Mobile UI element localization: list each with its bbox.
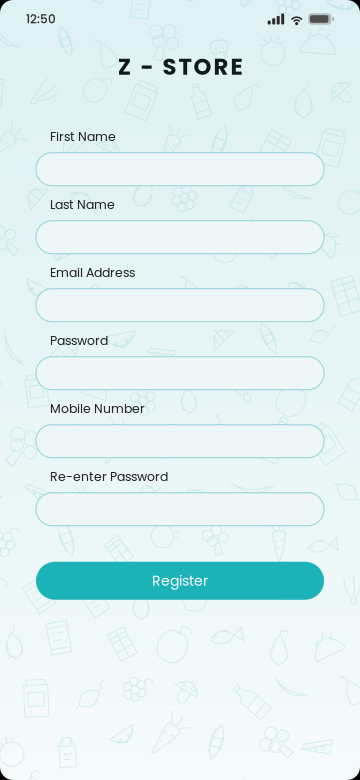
staticText: Re-enter Password bbox=[50, 468, 168, 485]
staticText: Email Address bbox=[50, 264, 135, 281]
staticText: Mobile Number bbox=[50, 400, 145, 417]
staticText: First Name bbox=[50, 128, 116, 145]
staticText: Z - STORE bbox=[117, 51, 242, 83]
staticText: Register bbox=[152, 571, 208, 590]
button[interactable]: Register bbox=[36, 562, 324, 600]
staticText: Last Name bbox=[50, 196, 115, 213]
staticText: 12:50 bbox=[26, 11, 56, 27]
staticText: Password bbox=[50, 332, 108, 349]
